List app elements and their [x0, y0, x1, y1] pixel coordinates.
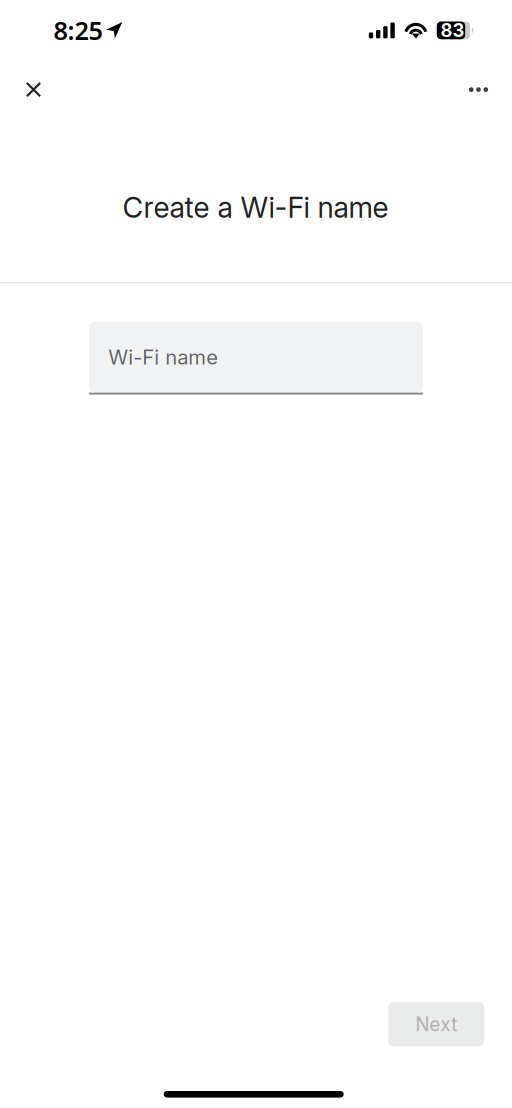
button[interactable]: Close: [9, 66, 57, 114]
button[interactable]: Wi-Fi name: [89, 322, 423, 395]
staticText: 83: [441, 19, 465, 42]
staticText: Create a Wi-Fi name: [122, 190, 388, 225]
button[interactable]: Next: [388, 1002, 484, 1046]
staticText: Wi-Fi name: [108, 345, 218, 369]
button[interactable]: More options: [454, 66, 502, 114]
staticText: 8:25: [53, 13, 102, 47]
staticText: Next: [415, 1013, 457, 1036]
